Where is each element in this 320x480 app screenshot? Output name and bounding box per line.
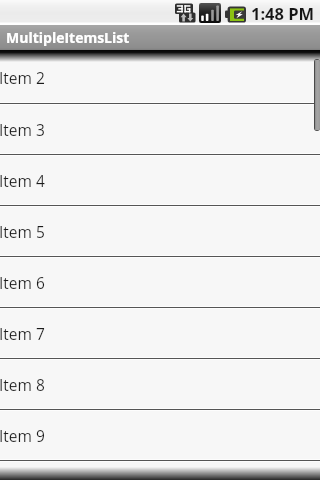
button[interactable]: Item 4 <box>0 155 320 206</box>
staticText: Item 3 <box>0 119 45 140</box>
staticText: Item 7 <box>0 323 45 344</box>
button[interactable]: Item 10 <box>0 461 320 480</box>
staticText: Item 8 <box>0 374 45 395</box>
button[interactable]: Item 9 <box>0 410 320 461</box>
button[interactable]: Item 6 <box>0 257 320 308</box>
button[interactable]: Item 3 <box>0 104 320 155</box>
staticText: Item 9 <box>0 425 45 446</box>
staticText: Item 5 <box>0 221 45 242</box>
button[interactable]: Item 2 <box>0 50 320 104</box>
button[interactable]: Item 7 <box>0 308 320 359</box>
staticText: Item 10 <box>0 476 54 480</box>
staticText: Item 2 <box>0 67 45 88</box>
staticText: MultipleItemsList <box>6 28 130 47</box>
button[interactable]: Item 5 <box>0 206 320 257</box>
staticText: 1:48 PM <box>251 2 315 24</box>
staticText: Item 6 <box>0 272 45 293</box>
button[interactable]: Item 8 <box>0 359 320 410</box>
staticText: Item 4 <box>0 170 45 191</box>
